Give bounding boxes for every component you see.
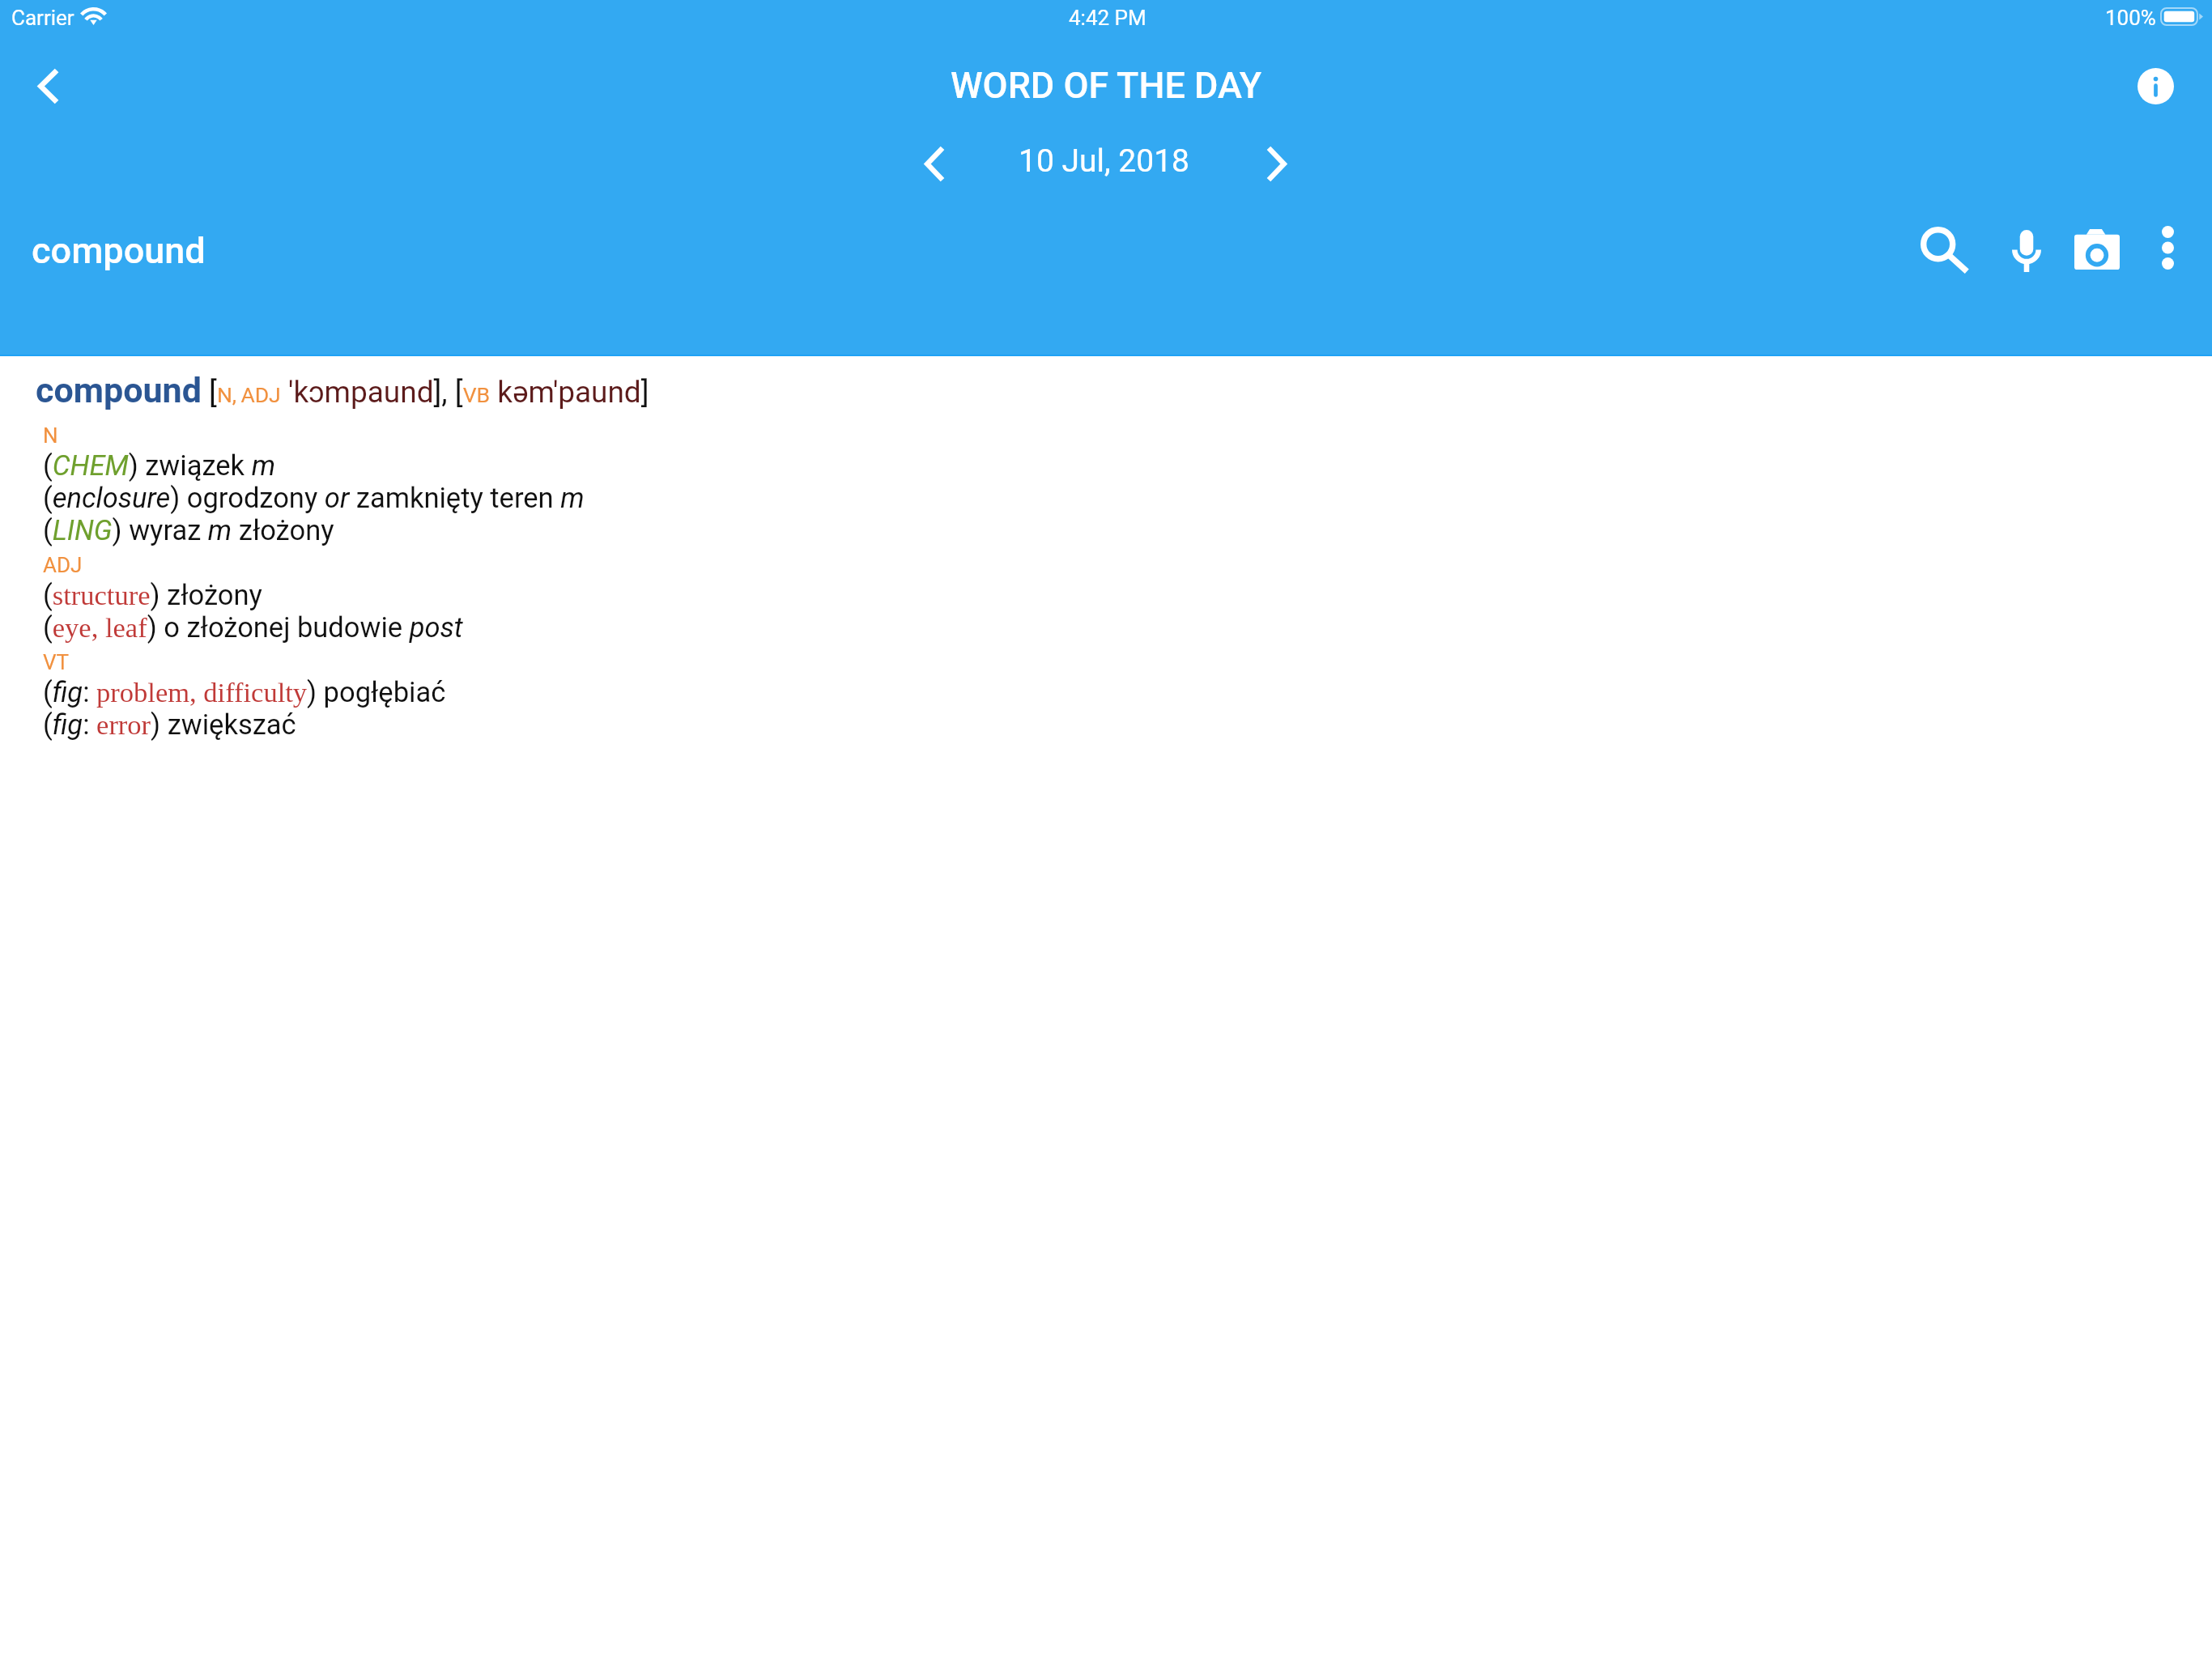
staticText: (CHEM) związek m xyxy=(43,449,275,482)
staticText: WORD OF THE DAY xyxy=(951,64,1262,107)
staticText: Carrier xyxy=(11,6,74,30)
staticText: 10 Jul, 2018 xyxy=(1019,142,1190,180)
staticText: (structure) złożony xyxy=(43,579,262,611)
button[interactable]: Back xyxy=(9,47,87,125)
staticText: compound xyxy=(32,229,206,272)
button[interactable]: Previous day xyxy=(904,134,963,193)
staticText: VT xyxy=(43,650,70,674)
staticText: (LING) wyraz m złożony xyxy=(43,514,334,546)
staticText: (enclosure) ogrodzony or zamknięty teren… xyxy=(43,482,585,514)
staticText: (fig: problem, difficulty) pogłębiać xyxy=(43,676,446,708)
button[interactable]: Next day xyxy=(1248,134,1306,193)
button[interactable]: More options xyxy=(2138,215,2197,280)
staticText: 100% xyxy=(2105,6,2156,30)
staticText: 4:42 PM xyxy=(1069,6,1146,30)
button[interactable]: Search xyxy=(1905,210,1983,288)
staticText: (eye, leaf) o złożonej budowie post xyxy=(43,611,463,644)
button[interactable]: Voice search xyxy=(1989,214,2064,288)
staticText: N xyxy=(43,423,58,448)
button[interactable]: Camera search xyxy=(2060,212,2134,287)
staticText: compound [N, ADJ 'kɔmpaund], [VB kəm'pau… xyxy=(36,370,649,410)
staticText: ADJ xyxy=(43,553,83,577)
staticText: (fig: error) zwiększać xyxy=(43,708,296,741)
button[interactable]: Information xyxy=(2121,52,2189,120)
